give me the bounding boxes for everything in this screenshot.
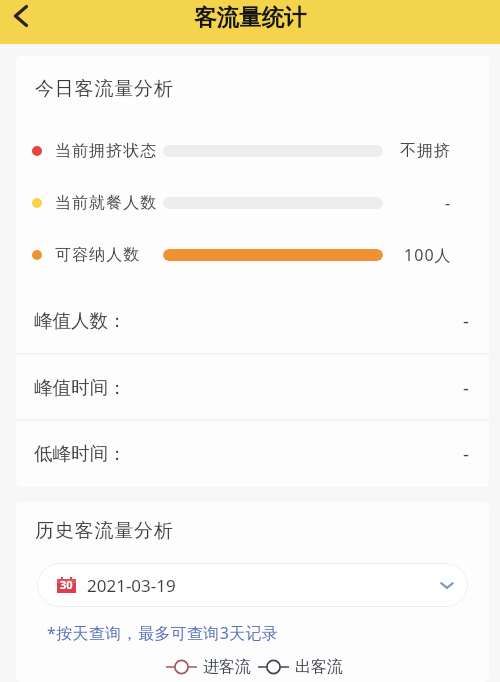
- staticText: 客流量统计: [194, 3, 307, 31]
- button[interactable]: 进客流: [166, 657, 251, 677]
- staticText: 2021-03-19: [87, 574, 176, 597]
- staticText: 100人: [404, 244, 452, 266]
- button[interactable]: 出客流: [258, 657, 343, 677]
- staticText: 今日客流量分析: [35, 77, 174, 101]
- staticText: 出客流: [295, 657, 343, 677]
- staticText: 历史客流量分析: [35, 519, 174, 543]
- staticText: *按天查询，最多可查询3天记录: [47, 622, 279, 644]
- staticText: 进客流: [203, 657, 251, 677]
- staticText: -: [463, 375, 469, 400]
- staticText: -: [463, 441, 469, 466]
- staticText: 不拥挤: [400, 141, 452, 161]
- staticText: -: [463, 308, 469, 333]
- staticText: 峰值时间：: [34, 376, 127, 399]
- button[interactable]: 30: [37, 563, 468, 607]
- staticText: -: [445, 192, 452, 214]
- staticText: 峰值人数：: [34, 309, 127, 332]
- button[interactable]: Back: [0, 0, 42, 37]
- staticText: 低峰时间：: [34, 442, 127, 465]
- staticText: 当前就餐人数: [55, 193, 158, 213]
- staticText: 30: [60, 577, 73, 592]
- staticText: 当前拥挤状态: [55, 141, 158, 161]
- staticText: 可容纳人数: [55, 245, 141, 265]
